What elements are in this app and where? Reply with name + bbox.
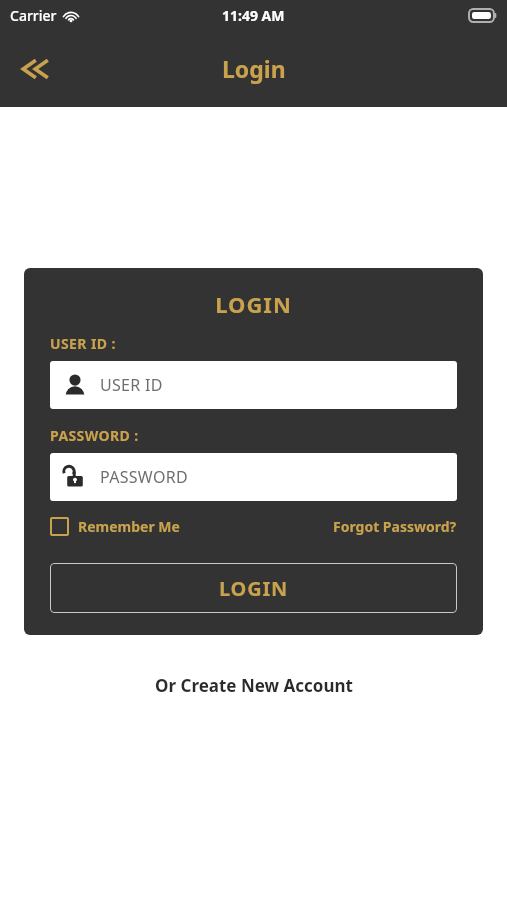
button[interactable]: LOGIN bbox=[50, 563, 457, 613]
button[interactable]: Back bbox=[7, 42, 61, 96]
staticText: Forgot Password? bbox=[333, 517, 457, 536]
staticText: PASSWORD : bbox=[50, 426, 139, 445]
button[interactable]: Remember Me bbox=[50, 515, 180, 538]
staticText: Carrier bbox=[10, 6, 57, 25]
button[interactable]: USER ID bbox=[50, 361, 457, 409]
staticText: Remember Me bbox=[78, 517, 180, 536]
staticText: Login bbox=[222, 53, 286, 84]
button[interactable]: Forgot Password? bbox=[333, 515, 457, 538]
staticText: USER ID : bbox=[50, 334, 116, 353]
staticText: Or Create New Account bbox=[155, 674, 353, 697]
staticText: LOGIN bbox=[50, 289, 457, 319]
staticText: PASSWORD bbox=[100, 466, 188, 488]
button[interactable]: PASSWORD bbox=[50, 453, 457, 501]
staticText: USER ID bbox=[100, 374, 163, 396]
staticText: 11:49 AM bbox=[222, 6, 285, 25]
staticText: LOGIN bbox=[219, 575, 289, 602]
button[interactable]: Or Create New Account bbox=[145, 669, 363, 702]
